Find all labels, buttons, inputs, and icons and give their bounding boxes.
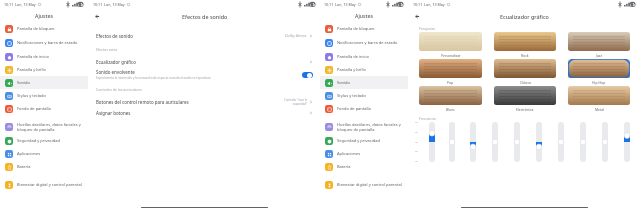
button[interactable]: Stylus y teclado [0, 89, 88, 102]
staticText: Ecualizador gráfico [500, 13, 549, 20]
button[interactable]: Pantalla y brillo [0, 63, 88, 76]
button[interactable]: Pantalla de inicio [0, 50, 88, 63]
button[interactable]: Huellas dactilares, datos faciales y blo… [0, 119, 88, 134]
staticText: Efectos de sonido [182, 13, 228, 20]
button[interactable]: Metal [568, 86, 630, 112]
button[interactable]: Pantalla de inicio [320, 50, 408, 63]
staticText: Pop [447, 80, 454, 85]
staticText: Batería [337, 164, 351, 169]
staticText: Asignar botones [96, 110, 131, 116]
button[interactable]: Clásica [494, 59, 556, 85]
button[interactable]: Hip-Hop [568, 59, 630, 85]
button[interactable]: Pantalla y brillo [320, 63, 408, 76]
staticText: 10:11 Lun, 13 May [4, 2, 36, 7]
staticText: 10:11 Lun, 13 May [413, 2, 445, 7]
staticText: Sonido envolvente [96, 69, 135, 75]
staticText: Electrónica [516, 107, 534, 112]
button[interactable]: Personalizar [419, 32, 482, 58]
button[interactable]: Pantalla de bloqueo [320, 22, 408, 35]
button[interactable]: Atrás [413, 12, 422, 21]
staticText: Ajustes [35, 12, 54, 19]
staticText: Bienestar digital y control parental [337, 182, 402, 187]
staticText: Huellas dactilares, datos faciales y blo… [17, 122, 84, 132]
button[interactable]: Notificaciones y barra de estado [0, 35, 88, 50]
button[interactable]: Jazz [568, 32, 630, 58]
staticText: Experimenta la inmersión y la sensación … [96, 76, 211, 80]
button[interactable]: Fondo de pantalla [0, 102, 88, 115]
button[interactable]: Fondo de pantalla [320, 102, 408, 115]
staticText: Pantalla de inicio [17, 54, 49, 59]
button[interactable]: Botones del control remoto para auricula… [89, 96, 320, 107]
staticText: Sonido [17, 80, 30, 85]
staticText: Huellas dactilares, datos faciales y blo… [337, 122, 404, 132]
button[interactable]: Batería [320, 160, 408, 173]
staticText: Stylus y teclado [337, 93, 366, 98]
staticText: Fondo de pantalla [337, 106, 371, 111]
button[interactable]: Sonido envolvente [89, 67, 320, 82]
staticText: Controlar “usar la capacidad” [284, 98, 307, 105]
button[interactable]: Electrónica [494, 86, 556, 112]
staticText: Aplicaciones [17, 151, 41, 156]
staticText: Seguridad y privacidad [17, 138, 60, 143]
staticText: Pantalla y brillo [17, 67, 46, 72]
staticText: Pantalla y brillo [337, 67, 366, 72]
staticText: Aplicaciones [337, 151, 361, 156]
button[interactable]: Huellas dactilares, datos faciales y blo… [320, 119, 408, 134]
button[interactable]: Efectos de sonido [89, 29, 320, 42]
button[interactable]: Pantalla de bloqueo [0, 22, 88, 35]
staticText: Stylus y teclado [17, 93, 46, 98]
staticText: Batería [17, 164, 31, 169]
staticText: Seguridad y privacidad [337, 138, 380, 143]
staticText: Pantalla de bloqueo [17, 26, 55, 31]
staticText: Frecuencia [419, 116, 436, 120]
button[interactable]: Asignar botones [89, 107, 320, 118]
staticText: Preajustes [419, 26, 436, 30]
button[interactable]: Atrás [93, 12, 102, 21]
staticText: Botones del control remoto para auricula… [96, 99, 189, 105]
staticText: 10:11 Lun, 13 May [93, 2, 125, 7]
button[interactable]: Aplicaciones [320, 147, 408, 160]
staticText: Sonido [337, 80, 350, 85]
button[interactable] [302, 72, 313, 78]
button[interactable]: Pop [419, 59, 482, 85]
staticText: Controles de los auriculares [96, 87, 142, 92]
button[interactable]: Batería [0, 160, 88, 173]
staticText: Pantalla de bloqueo [337, 26, 375, 31]
staticText: Ecualizador gráfico [96, 59, 136, 65]
button[interactable]: Bienestar digital y control parental [320, 177, 408, 192]
staticText: Bienestar digital y control parental [17, 182, 82, 187]
staticText: Efectos de sonido [96, 33, 133, 39]
button[interactable]: Blues [419, 86, 482, 112]
staticText: Clásica [520, 80, 531, 85]
staticText: Ajustes [355, 12, 374, 19]
staticText: Notificaciones y barra de estado [337, 40, 398, 45]
button[interactable]: Seguridad y privacidad [320, 134, 408, 147]
button[interactable]: Stylus y teclado [320, 89, 408, 102]
staticText: Pantalla de inicio [337, 54, 369, 59]
staticText: Jazz [596, 53, 603, 58]
button[interactable]: Sonido [0, 76, 88, 89]
button[interactable]: Seguridad y privacidad [0, 134, 88, 147]
button[interactable]: Aplicaciones [0, 147, 88, 160]
button[interactable]: Ecualizador gráfico [89, 56, 320, 67]
staticText: Efectos extra [96, 47, 118, 52]
staticText: Hip-Hop [592, 80, 606, 85]
staticText: Fondo de pantalla [17, 106, 51, 111]
staticText: 10:11 Lun, 13 May [324, 2, 356, 7]
staticText: Blues [446, 107, 455, 112]
staticText: Metal [595, 107, 604, 112]
button[interactable]: Rock [494, 32, 556, 58]
staticText: Personalizar [441, 53, 461, 58]
staticText: Dolby Atmos [285, 33, 307, 38]
staticText: Notificaciones y barra de estado [17, 40, 78, 45]
button[interactable]: Notificaciones y barra de estado [320, 35, 408, 50]
button[interactable]: Bienestar digital y control parental [0, 177, 88, 192]
button[interactable]: Sonido [320, 76, 408, 89]
staticText: Rock [521, 53, 529, 58]
